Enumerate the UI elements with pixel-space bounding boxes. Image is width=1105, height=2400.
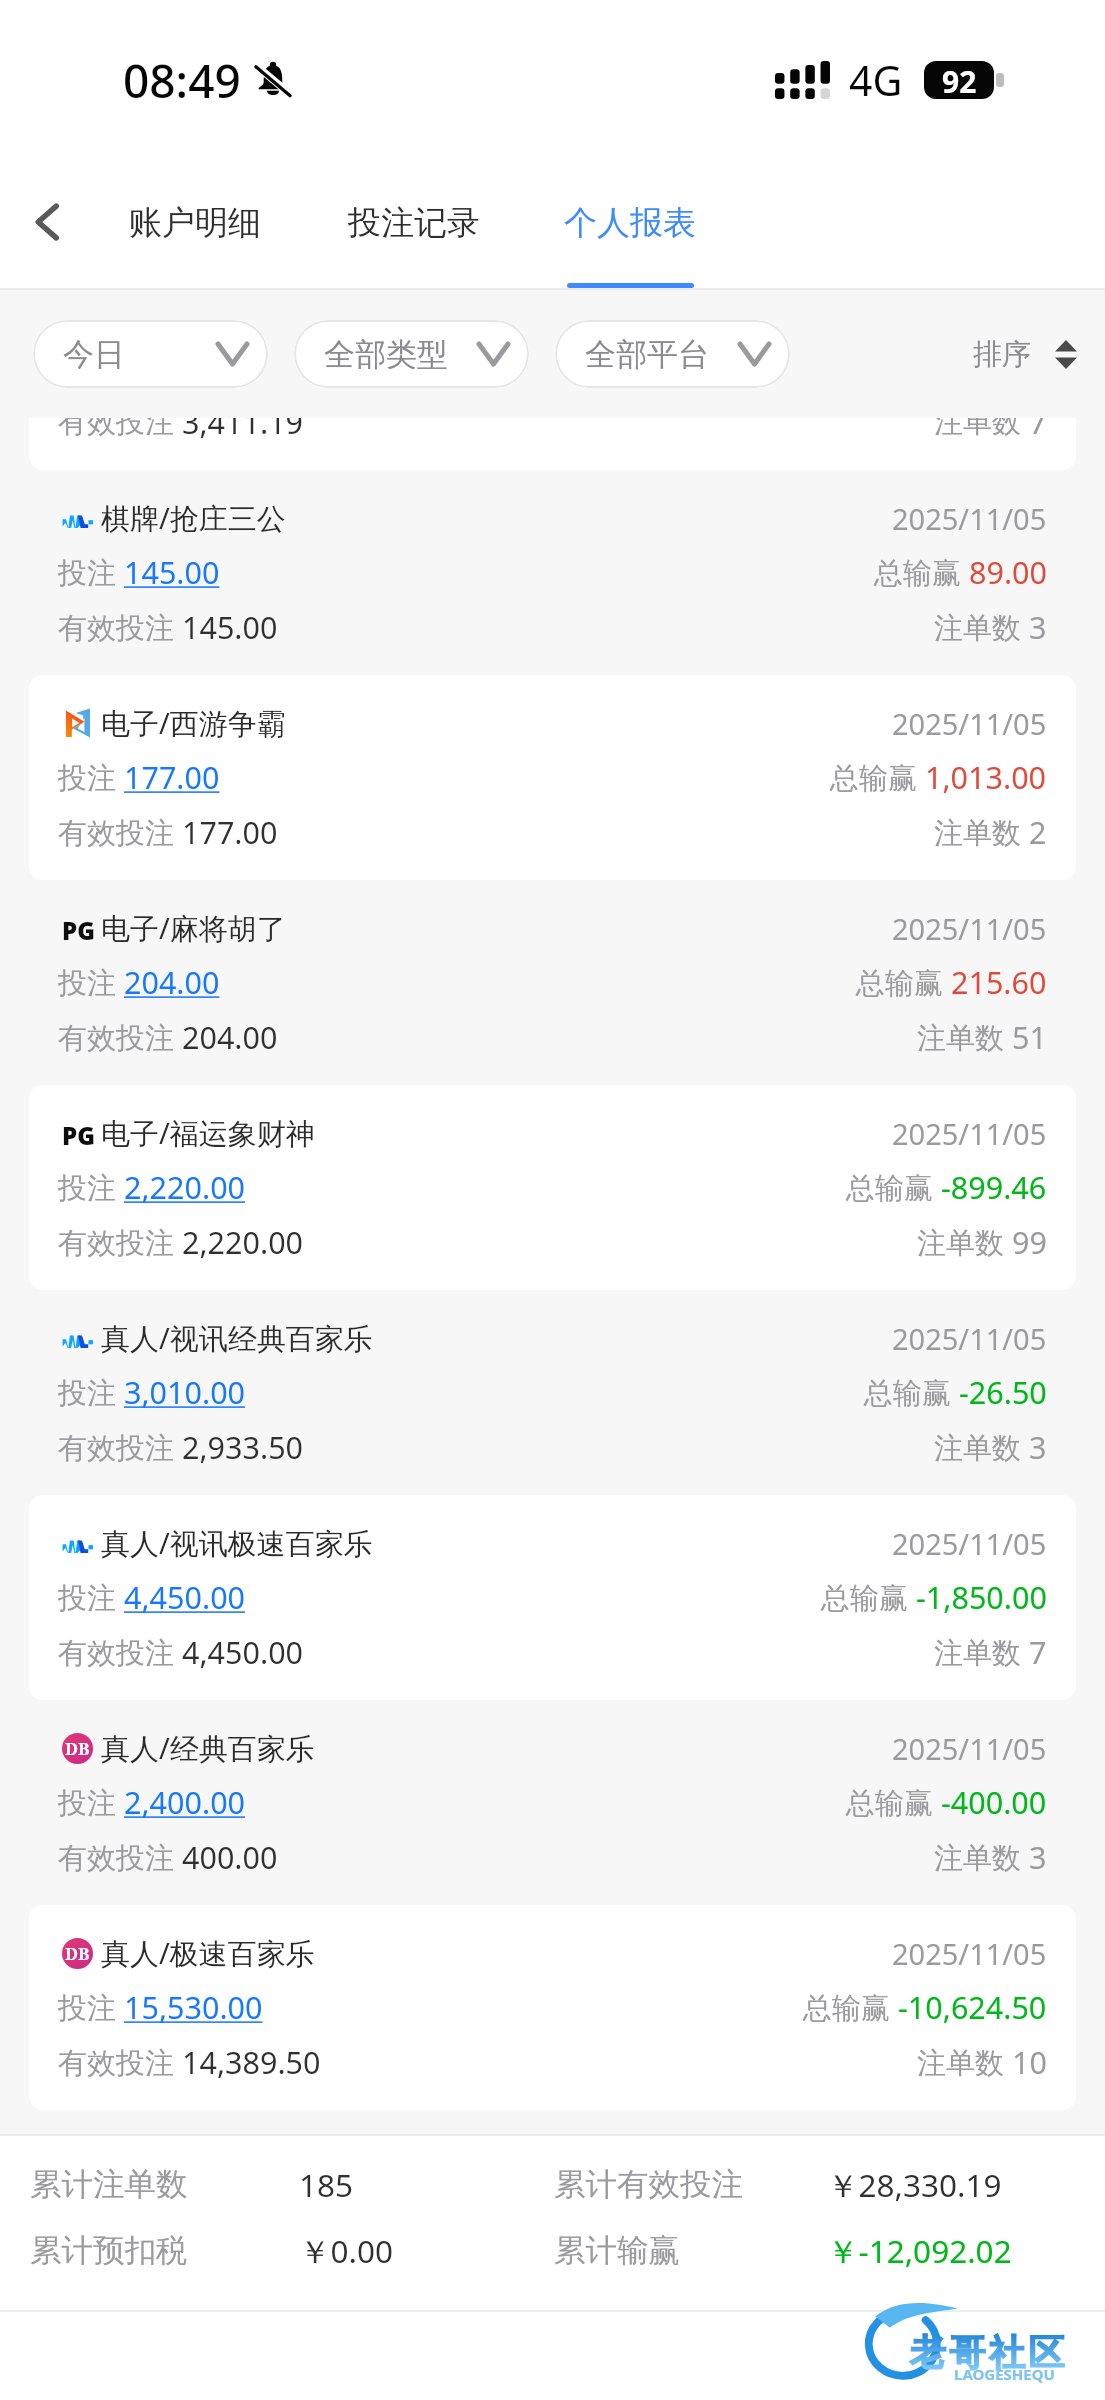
staticText: 185	[299, 2163, 354, 2206]
staticText: LAOGESHEQU	[954, 2364, 1055, 2384]
staticText: -400.00	[941, 1781, 1047, 1823]
button[interactable]: 今日	[33, 320, 268, 388]
staticText: 注单数	[934, 812, 1029, 852]
staticText: 3	[1029, 1426, 1047, 1468]
staticText: 全部平台	[585, 335, 709, 374]
button[interactable]: DB	[29, 1905, 1076, 2110]
staticText: 2025/11/05	[892, 499, 1047, 538]
staticText: 注单数	[917, 2042, 1012, 2082]
staticText: 4,450.00	[182, 1631, 304, 1673]
staticText: ￥-12,092.02	[827, 2229, 1012, 2272]
staticText: 总输赢	[864, 1372, 959, 1412]
staticText: 10	[1012, 2041, 1047, 2083]
staticText: 有效投注	[58, 1427, 182, 1467]
button[interactable]: 个人报表	[564, 202, 696, 288]
staticText: 7	[1029, 1631, 1047, 1673]
staticText: 电子/西游争霸	[101, 703, 286, 743]
staticText: 棋牌/抢庄三公	[101, 498, 286, 538]
button[interactable]: 4,450.00	[124, 1576, 246, 1618]
staticText: 1,013.00	[925, 756, 1047, 798]
button[interactable]: 2,220.00	[124, 1166, 246, 1208]
staticText: 今日	[63, 335, 125, 374]
staticText: DB	[65, 1737, 90, 1760]
staticText: 注单数	[934, 1632, 1029, 1672]
staticText: 总输赢	[846, 1782, 941, 1822]
staticText: -899.46	[941, 1166, 1047, 1208]
button[interactable]: 204.00	[124, 961, 220, 1003]
button[interactable]: 电子/西游争霸	[29, 675, 1076, 880]
staticText: 总输赢	[803, 1987, 898, 2027]
staticText: 7	[1029, 418, 1047, 443]
staticText: 账户明细	[129, 202, 261, 244]
button[interactable]: DB	[29, 1700, 1076, 1905]
staticText: 92	[942, 61, 977, 99]
staticText: 2,220.00	[182, 1221, 304, 1263]
staticText: 有效投注	[58, 418, 182, 441]
button[interactable]: 真人/视讯经典百家乐	[29, 1290, 1076, 1495]
staticText: 投注	[58, 1372, 124, 1412]
staticText: 投注	[58, 962, 124, 1002]
button[interactable]: 全部类型	[294, 320, 529, 388]
button[interactable]: 15,530.00	[124, 1986, 263, 2028]
staticText: 总输赢	[856, 962, 951, 1002]
staticText: 2025/11/05	[892, 1114, 1047, 1153]
staticText: 老哥社区	[908, 2330, 1066, 2375]
staticText: 有效投注	[58, 2042, 182, 2082]
staticText: 个人报表	[564, 202, 696, 244]
staticText: 99	[1012, 1221, 1047, 1263]
staticText: 51	[1012, 1016, 1047, 1058]
staticText: 注单数	[917, 1017, 1012, 1057]
staticText: 有效投注	[58, 1632, 182, 1672]
staticText: 排序	[973, 336, 1031, 373]
button[interactable]: 3,010.00	[124, 1371, 246, 1413]
staticText: PG	[62, 1119, 95, 1147]
staticText: 2025/11/05	[892, 1729, 1047, 1768]
staticText: 14,389.50	[182, 2041, 321, 2083]
button[interactable]: 排序	[973, 336, 1077, 373]
button[interactable]: 2,400.00	[124, 1781, 246, 1823]
button[interactable]: 返回	[10, 185, 84, 259]
staticText: -26.50	[959, 1371, 1047, 1413]
staticText: 投注	[58, 1167, 124, 1207]
staticText: 08:49	[123, 49, 241, 112]
button[interactable]: 棋牌/抢庄三公	[29, 470, 1076, 675]
staticText: 2025/11/05	[892, 704, 1047, 743]
staticText: 注单数	[917, 1222, 1012, 1262]
staticText: ￥0.00	[299, 2229, 393, 2272]
button[interactable]: PG	[29, 1085, 1076, 1290]
staticText: 204.00	[182, 1016, 278, 1058]
staticText: 投注	[58, 552, 124, 592]
staticText: 注单数	[934, 1427, 1029, 1467]
staticText: 真人/经典百家乐	[101, 1728, 315, 1768]
button[interactable]: 真人/视讯极速百家乐	[29, 1495, 1076, 1700]
staticText: 投注	[58, 757, 124, 797]
button[interactable]: 账户明细	[129, 202, 261, 288]
staticText: 电子/福运象财神	[101, 1113, 315, 1153]
staticText: 注单数	[934, 1837, 1029, 1877]
staticText: 累计预扣税	[30, 2231, 188, 2271]
staticText: 有效投注	[58, 1222, 182, 1262]
staticText: 2025/11/05	[892, 1319, 1047, 1358]
button[interactable]: 全部平台	[555, 320, 790, 388]
button[interactable]: 145.00	[124, 551, 220, 593]
button[interactable]: 177.00	[124, 756, 220, 798]
staticText: DB	[65, 1942, 90, 1965]
button[interactable]: 投注记录	[348, 202, 480, 288]
staticText: 投注记录	[348, 202, 480, 244]
staticText: 注单数	[934, 418, 1029, 441]
staticText: 2025/11/05	[892, 1524, 1047, 1563]
staticText: 真人/视讯经典百家乐	[101, 1318, 373, 1358]
staticText: 400.00	[182, 1836, 278, 1878]
staticText: 全部类型	[324, 335, 448, 374]
staticText: 2,933.50	[182, 1426, 304, 1468]
staticText: 89.00	[969, 551, 1047, 593]
staticText: 总输赢	[821, 1577, 916, 1617]
staticText: 真人/视讯极速百家乐	[101, 1523, 373, 1563]
staticText: 累计注单数	[30, 2165, 188, 2205]
button[interactable]: PG	[29, 880, 1076, 1085]
staticText: 有效投注	[58, 607, 182, 647]
staticText: PG	[62, 914, 95, 942]
staticText: 累计有效投注	[554, 2165, 743, 2205]
staticText: -10,624.50	[898, 1986, 1047, 2028]
staticText: 2025/11/05	[892, 909, 1047, 948]
